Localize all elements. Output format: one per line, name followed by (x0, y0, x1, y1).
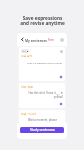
button[interactable]: Kor (21, 49, 29, 53)
staticText: 셔츠 색깔 (21, 85, 33, 89)
button[interactable]: Play audio (59, 102, 63, 106)
staticText: That is a frequent and accurate (27, 61, 62, 64)
staticText: Kor (22, 50, 26, 53)
staticText: My sentences (25, 38, 47, 42)
staticText: 오늘 날씨 (21, 54, 33, 58)
button[interactable]: 셔츠 색깔 (19, 83, 65, 108)
staticText: Save expressions and revise anytime (20, 15, 65, 26)
button[interactable]: Kor (19, 47, 65, 81)
staticText: 조금 기다려 (21, 112, 36, 116)
staticText: Has this shirt I have it ___ in yellow? (28, 91, 63, 98)
button[interactable]: Back (20, 37, 25, 42)
button[interactable]: Play audio (59, 75, 63, 79)
staticText: Study sentences (30, 128, 55, 132)
button[interactable]: Profile (60, 38, 64, 42)
staticText: Wait a moment, please (28, 118, 57, 122)
button[interactable]: 조금 기다려 (19, 110, 65, 123)
staticText: Free (48, 38, 54, 42)
button[interactable]: Study sentences (20, 127, 64, 133)
